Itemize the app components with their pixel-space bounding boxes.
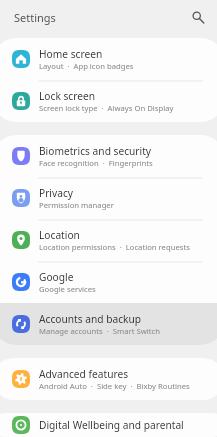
button[interactable]: Biometrics and security [0, 135, 217, 177]
button[interactable]: Home screen [0, 38, 217, 80]
staticText: Layout · App icon badges [39, 61, 134, 71]
staticText: Digital Wellbeing and parental [39, 418, 184, 432]
staticText: Accounts and backup [39, 312, 142, 326]
staticText: Android Auto · Side key · Bixby Routines [39, 381, 190, 391]
button[interactable]: Lock screen [0, 80, 217, 122]
staticText: Permission manager [39, 200, 114, 210]
staticText: Lock screen [39, 89, 96, 103]
staticText: Home screen [39, 47, 103, 61]
staticText: Screen lock type · Always On Display [39, 103, 174, 113]
staticText: Biometrics and security [39, 144, 152, 158]
button[interactable]: Location [0, 219, 217, 261]
staticText: Location permissions · Location requests [39, 242, 190, 252]
staticText: Advanced features [39, 367, 129, 381]
staticText: Google [39, 270, 74, 284]
button[interactable]: Digital Wellbeing and parental [0, 413, 217, 437]
staticText: Location [39, 228, 80, 242]
button[interactable]: Advanced features [0, 358, 217, 400]
button[interactable]: Accounts and backup [0, 303, 217, 345]
button[interactable]: Google [0, 261, 217, 303]
staticText: Manage accounts · Smart Switch [39, 326, 160, 336]
button[interactable]: Search [186, 5, 208, 27]
button[interactable]: Privacy [0, 177, 217, 219]
staticText: Privacy [39, 186, 73, 200]
staticText: Settings [14, 10, 56, 25]
staticText: Face recognition · Fingerprints [39, 158, 153, 168]
staticText: Google services [39, 284, 96, 294]
